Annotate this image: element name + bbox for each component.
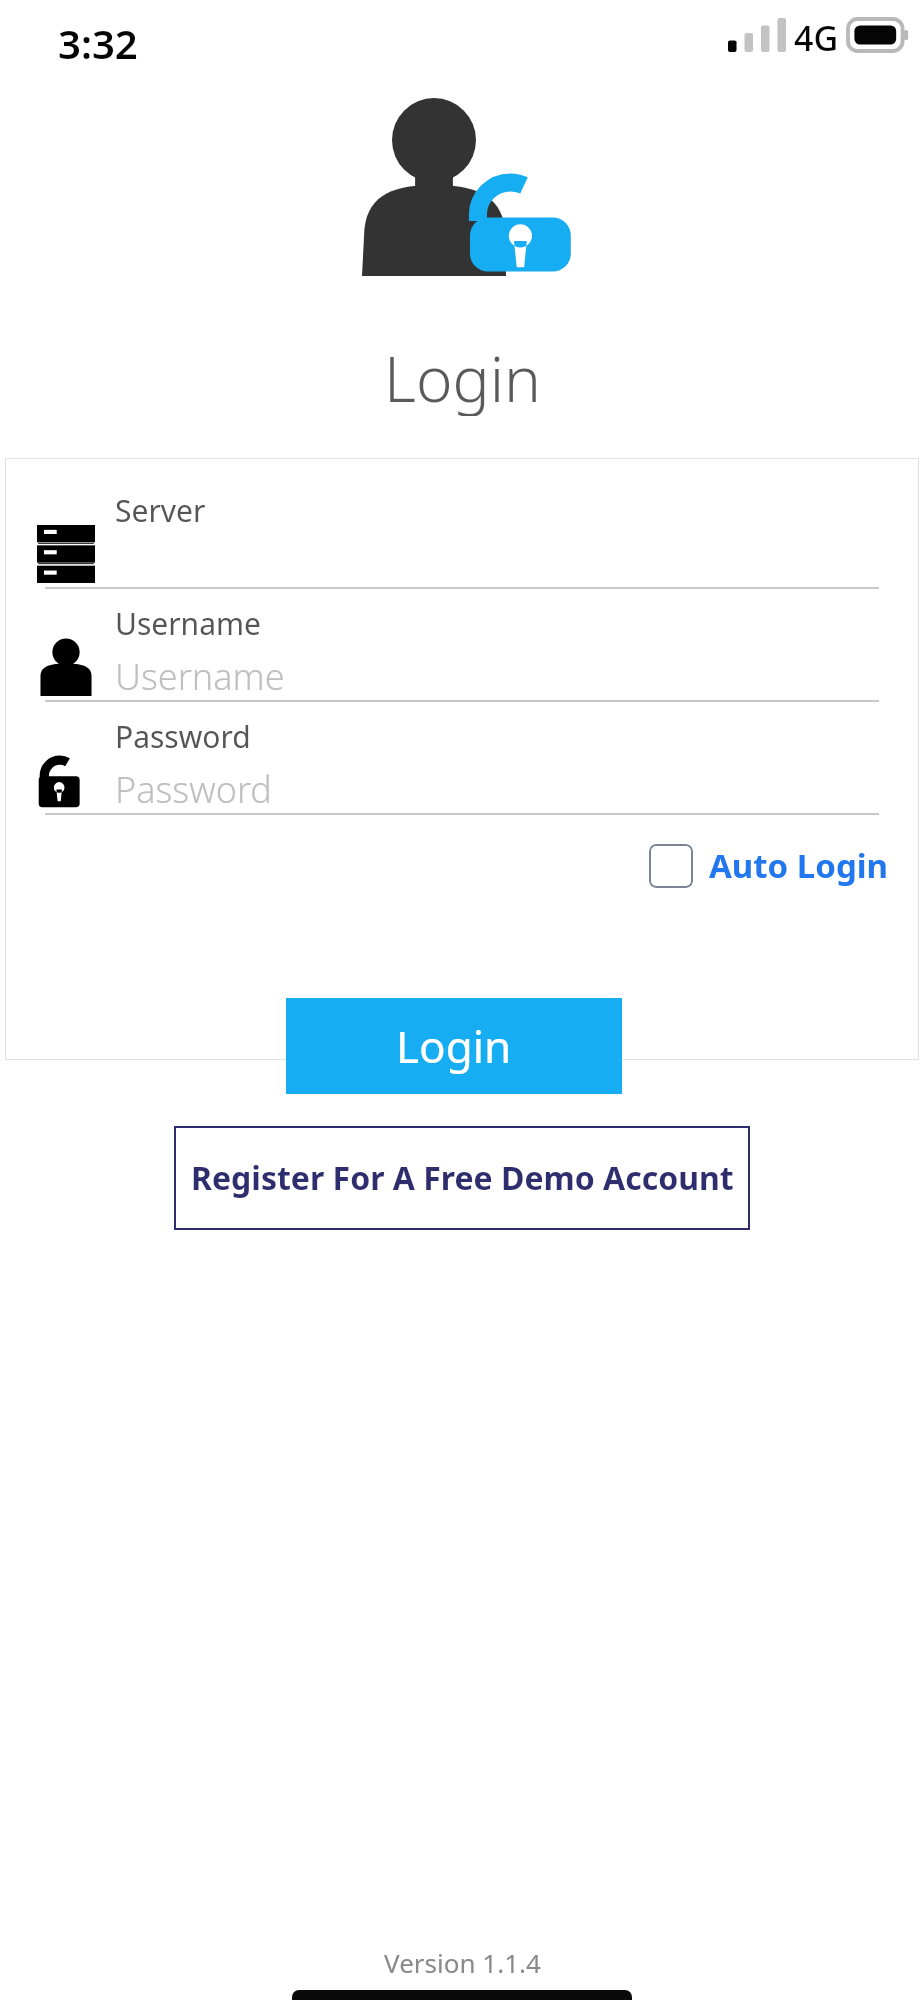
staticText: Login (396, 1016, 512, 1076)
staticText: 3:32 (58, 16, 138, 70)
staticText: Auto Login (709, 843, 889, 888)
staticText: 4G (794, 15, 839, 61)
button[interactable]: Login (286, 998, 622, 1094)
staticText: Version 1.1.4 (384, 1945, 541, 1980)
button[interactable]: Username (5, 603, 919, 702)
other: Password (33, 747, 99, 813)
staticText: Username (115, 603, 261, 644)
other: Server (33, 521, 99, 587)
staticText: Password (115, 716, 251, 757)
staticText: Login (384, 336, 541, 416)
staticText: Password (115, 765, 272, 813)
button[interactable]: Register For A Free Demo Account (174, 1126, 750, 1230)
other: Username (33, 634, 99, 700)
button[interactable]: Auto Login (643, 837, 895, 894)
button[interactable]: Password (5, 716, 919, 815)
staticText: Username (115, 652, 285, 700)
staticText: Register For A Free Demo Account (191, 1156, 734, 1200)
staticText: Server (115, 490, 206, 531)
button[interactable]: Server (5, 490, 919, 589)
